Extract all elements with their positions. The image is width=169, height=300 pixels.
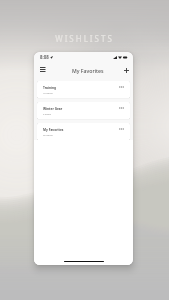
button[interactable]: Winter Gear <box>37 102 130 119</box>
staticText: My Favorites <box>43 128 64 132</box>
button[interactable]: My Favorites <box>37 123 130 140</box>
staticText: 8:08 <box>40 54 49 60</box>
staticText: 5 items <box>43 112 52 115</box>
button[interactable]: More options <box>117 124 125 134</box>
button[interactable]: Add wishlist <box>122 66 131 75</box>
staticText: Training <box>43 86 57 90</box>
button[interactable]: More options <box>117 103 125 113</box>
staticText: WISHLISTS <box>0 33 169 44</box>
button[interactable]: More options <box>117 82 125 92</box>
staticText: 10 items <box>43 91 53 94</box>
staticText: My Favorites <box>72 67 104 74</box>
staticText: 25 items <box>43 133 53 136</box>
button[interactable]: Training <box>37 81 130 98</box>
staticText: Winter Gear <box>43 107 63 111</box>
button[interactable]: Menu <box>36 64 48 76</box>
